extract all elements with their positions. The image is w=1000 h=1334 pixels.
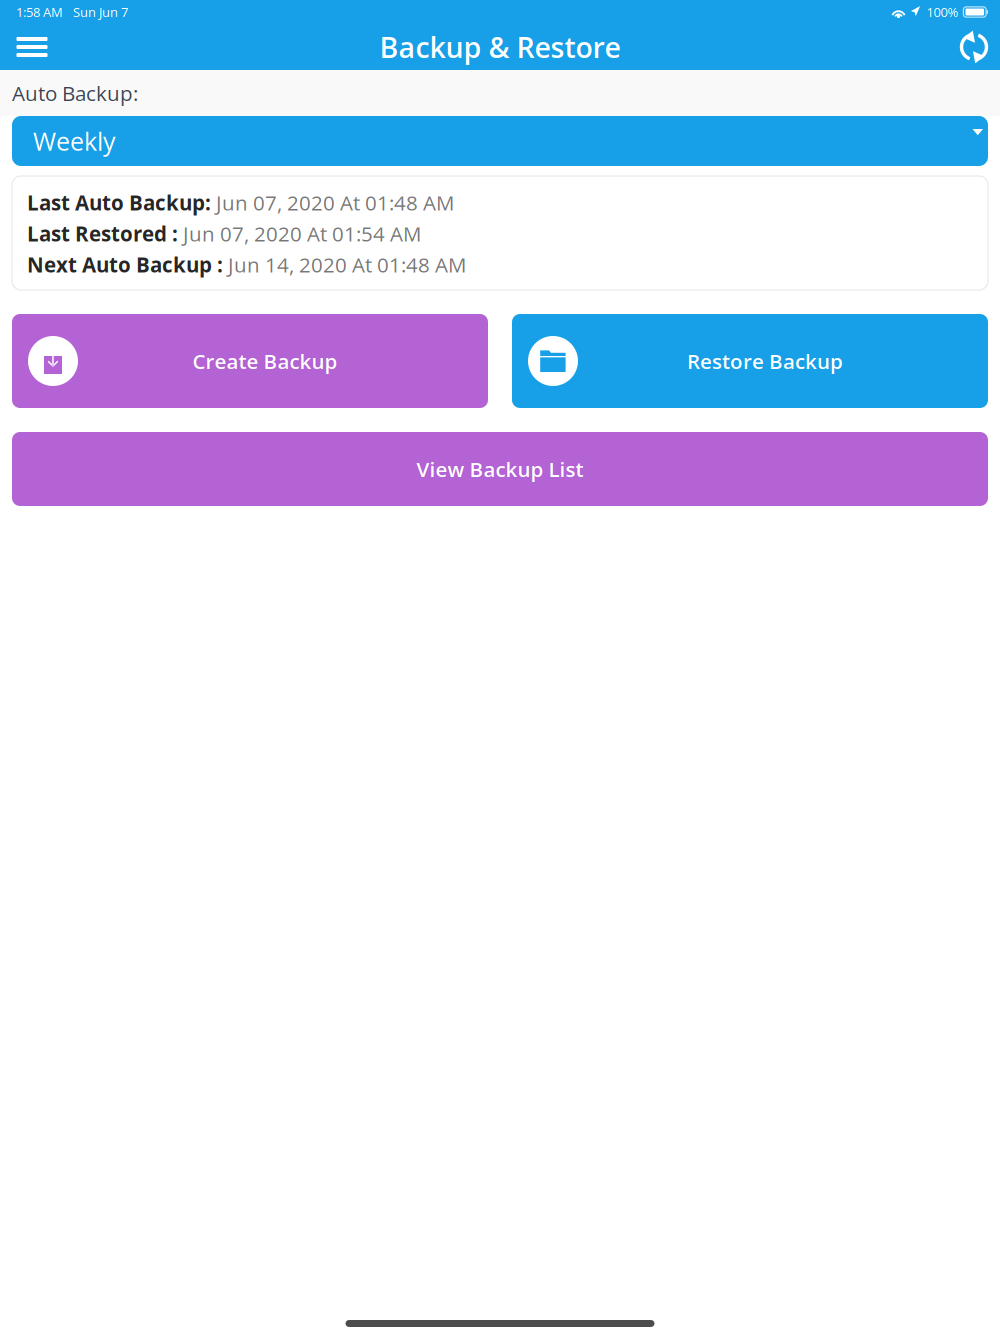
button[interactable]: Create Backup — [12, 314, 488, 408]
staticText: View Backup List — [416, 455, 583, 483]
staticText: Jun 07, 2020 At 01:48 AM — [211, 188, 454, 216]
staticText: 1:58 AM — [16, 3, 63, 21]
staticText: Sun Jun 7 — [73, 3, 128, 21]
staticText: Create Backup — [192, 347, 337, 375]
staticText: Next Auto Backup : — [27, 250, 223, 278]
staticText: Restore Backup — [687, 347, 843, 375]
staticText: 100% — [926, 3, 958, 21]
button[interactable]: View Backup List — [12, 432, 988, 506]
staticText: Weekly — [33, 124, 116, 158]
button[interactable]: Restore Backup — [512, 314, 988, 408]
button[interactable]: Sync now — [950, 24, 998, 70]
staticText: Jun 14, 2020 At 01:48 AM — [223, 250, 466, 278]
button[interactable]: Auto backup interval, Weekly — [12, 116, 988, 166]
staticText: Last Auto Backup: — [27, 188, 211, 216]
staticText: Last Restored : — [27, 219, 178, 247]
staticText: Jun 07, 2020 At 01:54 AM — [178, 219, 421, 247]
button[interactable]: Menu — [8, 24, 56, 70]
staticText: Backup & Restore — [379, 28, 620, 66]
staticText: Auto Backup: — [12, 79, 138, 107]
